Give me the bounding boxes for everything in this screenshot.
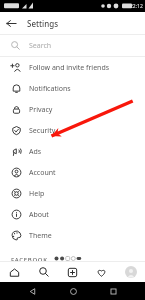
staticText: Security — [29, 126, 56, 136]
staticText: Ads — [29, 147, 42, 157]
button[interactable]: Home — [0, 262, 29, 282]
button[interactable]: Notifications — [0, 78, 145, 99]
staticText: FACEBOOK — [11, 256, 48, 261]
button[interactable]: Recents — [104, 282, 122, 300]
staticText: Follow and invite friends — [29, 63, 110, 73]
button[interactable]: Add post — [58, 262, 87, 282]
staticText: About — [29, 210, 49, 220]
button[interactable]: Help — [0, 183, 145, 204]
button[interactable]: Privacy — [0, 99, 145, 120]
button[interactable]: Ads — [0, 141, 145, 162]
staticText: Privacy — [29, 105, 53, 115]
staticText: 22:12 — [130, 3, 143, 10]
button[interactable]: Theme — [0, 225, 145, 246]
button[interactable]: Activity — [87, 262, 116, 282]
button[interactable]: Home — [64, 282, 82, 300]
button[interactable]: Search — [29, 262, 58, 282]
button[interactable]: Account — [0, 162, 145, 183]
staticText: Notifications — [29, 84, 71, 94]
button[interactable]: Follow and invite friends — [0, 57, 145, 78]
button[interactable]: About — [0, 204, 145, 225]
staticText: Search — [29, 41, 52, 51]
button[interactable]: Profile — [116, 262, 145, 282]
staticText: Account — [29, 168, 56, 178]
staticText: Settings — [27, 18, 59, 29]
staticText: Help — [29, 189, 45, 199]
button[interactable]: Back — [0, 12, 22, 34]
button[interactable]: Security — [0, 120, 145, 141]
button[interactable]: Search — [0, 35, 145, 56]
staticText: Theme — [29, 231, 52, 241]
button[interactable]: Back — [23, 282, 41, 300]
